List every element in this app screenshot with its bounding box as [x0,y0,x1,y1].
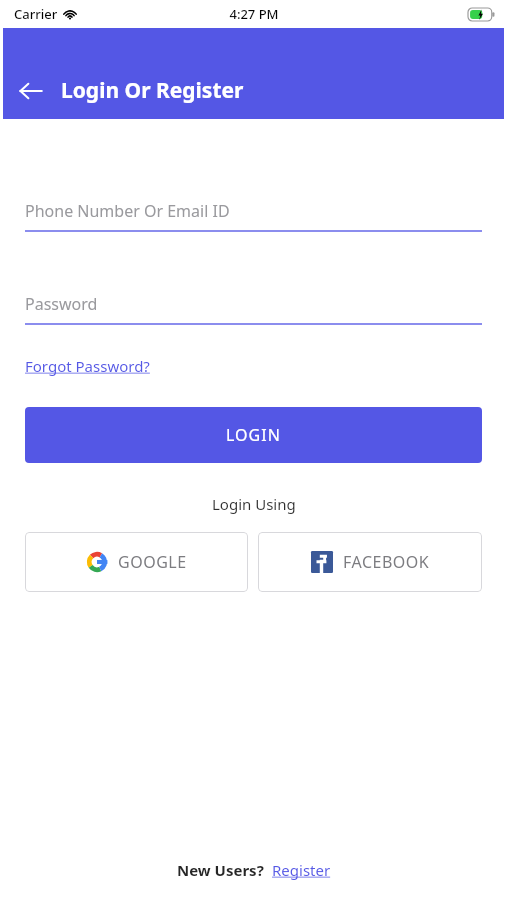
staticText: Phone Number Or Email ID [25,200,230,222]
staticText: Password [25,293,98,315]
staticText: FACEBOOK [343,551,430,573]
staticText: Login Or Register [61,76,244,105]
staticText: LOGIN [226,424,281,446]
button[interactable]: Password [25,290,482,318]
staticText: Carrier [14,5,58,23]
staticText: 4:27 PM [229,5,279,23]
staticText: New Users? [177,860,264,880]
staticText: Login Using [212,494,296,514]
button[interactable]: Forgot Password? [25,353,150,379]
staticText: Forgot Password? [25,356,150,376]
button[interactable]: Register [272,860,331,880]
button[interactable]: FACEBOOK [258,532,482,592]
button[interactable]: LOGIN [25,407,482,463]
button[interactable]: Phone Number Or Email ID [25,197,482,225]
staticText: Register [272,860,331,880]
staticText: GOOGLE [118,551,187,573]
button[interactable]: Back [3,63,59,119]
button[interactable]: GOOGLE [25,532,248,592]
